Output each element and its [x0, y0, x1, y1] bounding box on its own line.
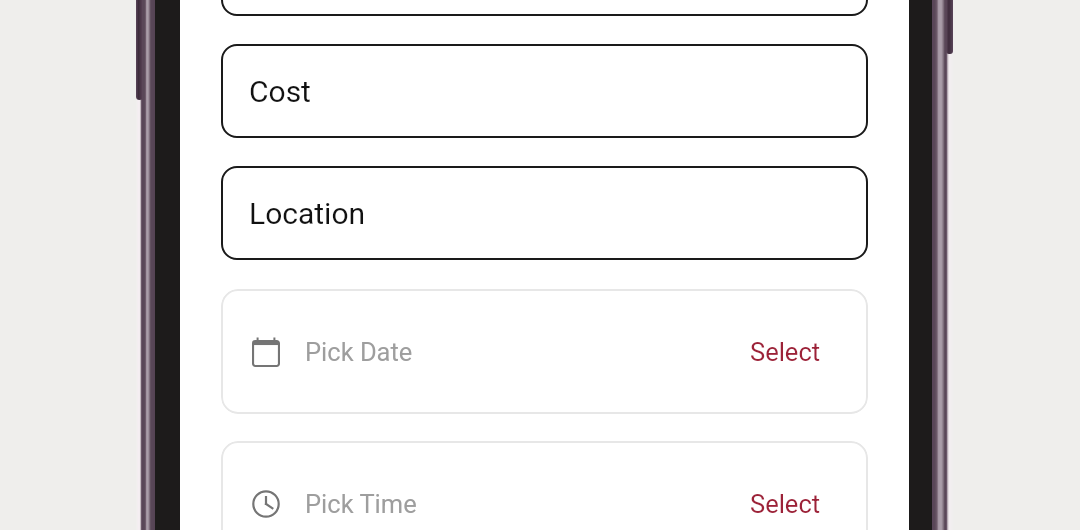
staticText: Cost [249, 74, 311, 109]
other: Clock [252, 489, 280, 519]
button[interactable]: Calendar [221, 289, 868, 414]
staticText: Select [750, 489, 821, 519]
button[interactable]: Select [750, 489, 821, 519]
other: Calendar [252, 337, 280, 367]
button[interactable]: Select [750, 337, 821, 367]
button[interactable]: Name [221, 0, 868, 16]
staticText: Pick Time [305, 489, 417, 519]
staticText: Location [249, 196, 366, 231]
button[interactable]: Location [221, 166, 868, 260]
button[interactable]: Cost [221, 44, 868, 138]
staticText: Select [750, 337, 821, 367]
staticText: Pick Date [305, 337, 413, 367]
button[interactable]: Clock [221, 441, 868, 530]
